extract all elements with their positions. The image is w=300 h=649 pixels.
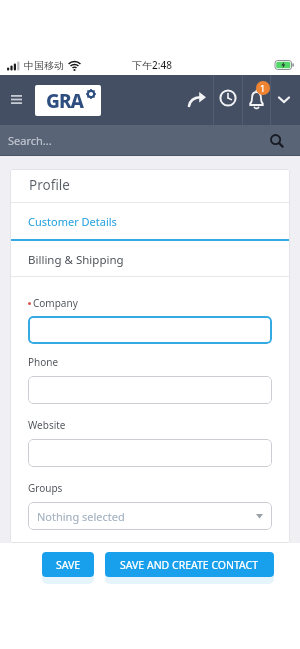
staticText: Phone: [28, 355, 59, 369]
staticText: SAVE AND CREATE CONTACT: [120, 558, 259, 572]
button[interactable]: [186, 87, 212, 113]
staticText: 中国移动: [24, 59, 64, 72]
staticText: Nothing selected: [37, 509, 125, 524]
button[interactable]: SAVE: [42, 552, 94, 577]
staticText: 1: [260, 82, 266, 94]
staticText: Billing & Shipping: [28, 252, 124, 268]
staticText: GRA: [46, 88, 83, 114]
button[interactable]: GRA: [35, 85, 101, 116]
button[interactable]: [28, 376, 272, 404]
staticText: SAVE: [56, 558, 81, 572]
button[interactable]: Customer Details: [10, 214, 290, 229]
button[interactable]: [4, 87, 30, 113]
button[interactable]: Search...: [0, 125, 300, 156]
staticText: Groups: [28, 481, 63, 495]
button[interactable]: [28, 439, 272, 467]
button[interactable]: [28, 316, 272, 344]
button[interactable]: 1: [245, 85, 273, 113]
staticText: Profile: [29, 176, 70, 194]
staticText: Website: [28, 418, 66, 432]
staticText: Customer Details: [28, 214, 117, 229]
button[interactable]: [217, 87, 239, 109]
staticText: Company: [33, 296, 78, 310]
button[interactable]: [274, 89, 294, 109]
staticText: 下午2:48: [132, 58, 172, 72]
button[interactable]: SAVE AND CREATE CONTACT: [105, 552, 274, 577]
button[interactable]: Nothing selected: [28, 502, 272, 530]
staticText: Search...: [8, 133, 52, 148]
button[interactable]: Billing & Shipping: [10, 252, 290, 268]
